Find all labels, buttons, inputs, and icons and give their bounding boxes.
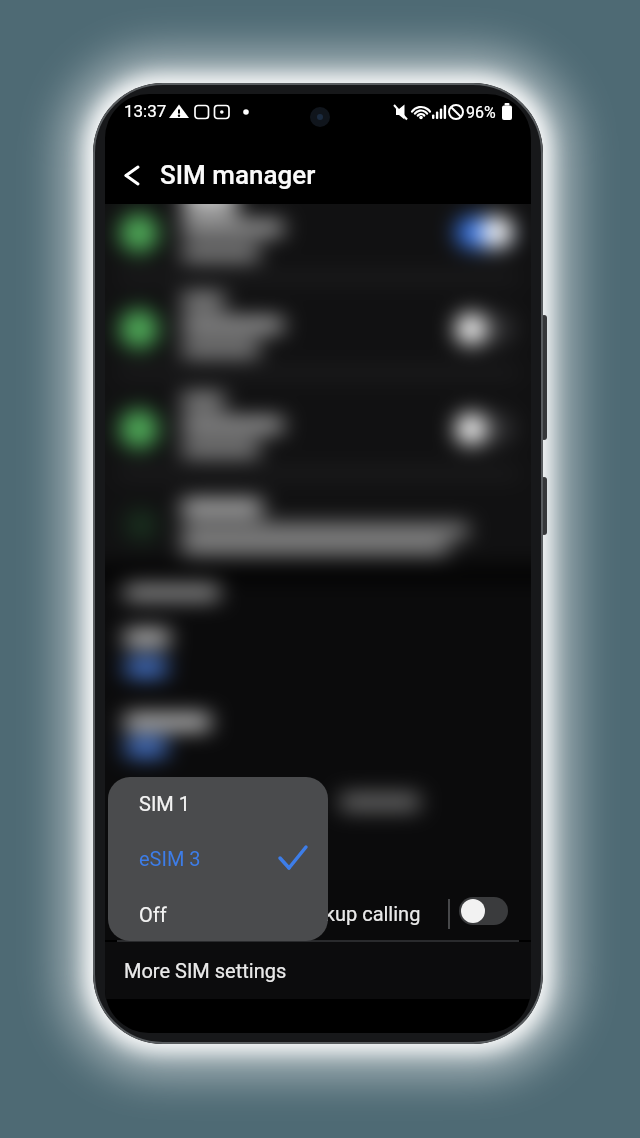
staticText: Backup calling: [291, 902, 421, 925]
button[interactable]: [113, 158, 157, 198]
staticText: 96%: [466, 103, 496, 122]
button[interactable]: [459, 897, 508, 925]
button[interactable]: More SIM settings: [105, 942, 531, 999]
button[interactable]: eSIM 3: [139, 847, 201, 870]
staticText: SIM manager: [160, 160, 316, 190]
button[interactable]: SIM 1: [139, 792, 190, 815]
button[interactable]: [108, 777, 328, 941]
staticText: More SIM settings: [124, 959, 287, 982]
button[interactable]: Off: [139, 903, 167, 926]
staticText: 13:37: [124, 101, 167, 121]
